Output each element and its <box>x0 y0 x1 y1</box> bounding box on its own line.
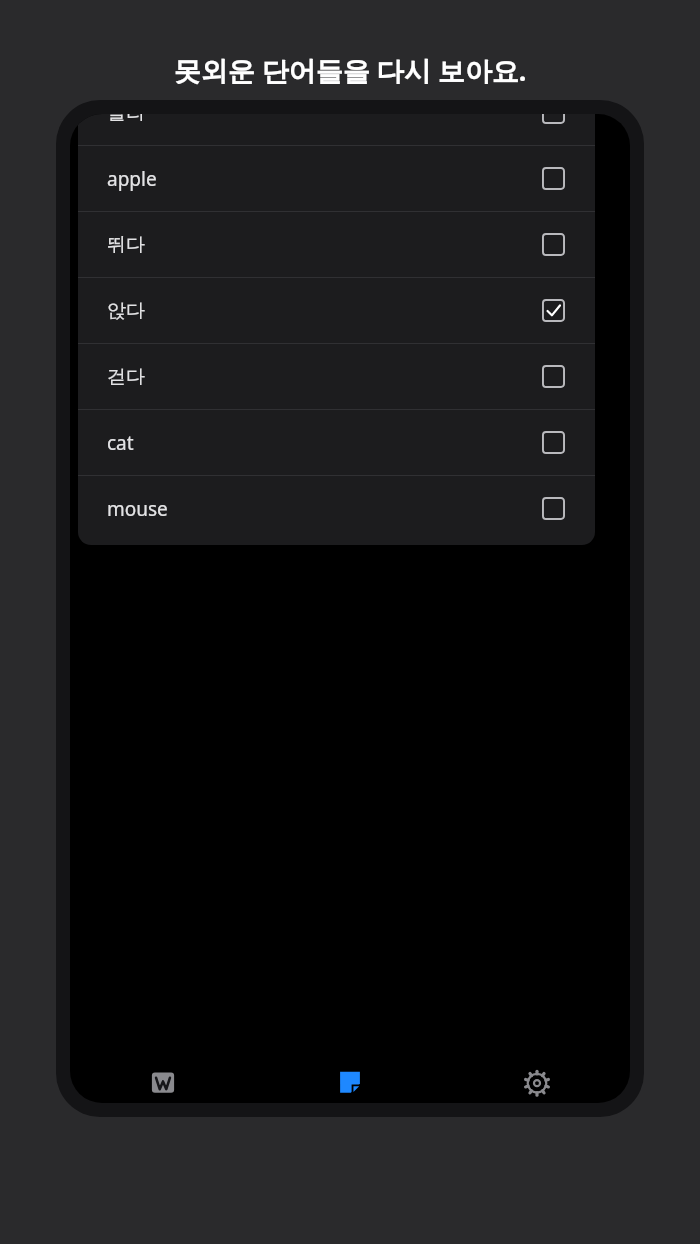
button[interactable]: mouse <box>78 476 595 541</box>
staticText: 뛰다 <box>107 233 145 257</box>
staticText: apple <box>107 166 157 192</box>
button[interactable]: Settings <box>443 1067 630 1103</box>
button[interactable]: Notes <box>256 1067 443 1103</box>
staticText: 걷다 <box>107 365 145 389</box>
button[interactable]: 뛰다 <box>78 212 595 277</box>
staticText: mouse <box>107 496 168 522</box>
staticText: cat <box>107 430 134 456</box>
staticText: 못외운 단어들을 다시 보아요. <box>0 52 700 89</box>
staticText: 앉다 <box>107 299 145 323</box>
button[interactable]: Words <box>70 1067 256 1103</box>
button[interactable]: 달리 <box>78 114 595 145</box>
button[interactable]: 앉다 <box>78 278 595 343</box>
button[interactable]: 걷다 <box>78 344 595 409</box>
button[interactable]: cat <box>78 410 595 475</box>
button[interactable]: apple <box>78 146 595 211</box>
staticText: 달리 <box>107 114 145 125</box>
